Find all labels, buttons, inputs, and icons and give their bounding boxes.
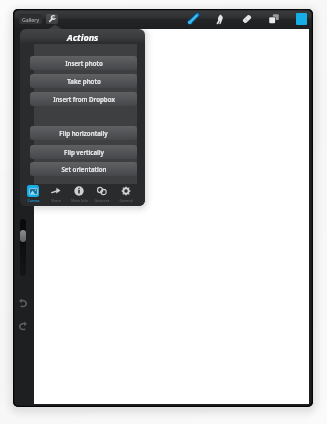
staticText: Flip horizontally bbox=[59, 129, 108, 137]
staticText: Canvas bbox=[27, 198, 40, 203]
button[interactable]: Brush size bbox=[20, 219, 26, 276]
staticText: Set orientation bbox=[61, 165, 107, 173]
staticText: Take photo bbox=[67, 77, 101, 85]
button[interactable]: Set orientation bbox=[30, 162, 137, 176]
staticText: Share bbox=[51, 198, 61, 203]
staticText: Gallery bbox=[22, 16, 40, 23]
staticText: More Info bbox=[71, 198, 88, 203]
button[interactable]: Smudge bbox=[213, 12, 227, 26]
button[interactable]: Take photo bbox=[30, 74, 137, 88]
button[interactable]: Gestures bbox=[91, 185, 113, 203]
staticText: Insert photo bbox=[65, 59, 103, 67]
staticText: Flip vertically bbox=[64, 148, 104, 156]
button[interactable]: Actions bbox=[46, 14, 58, 24]
button[interactable]: More Info bbox=[68, 185, 90, 203]
button[interactable]: Brush bbox=[186, 12, 200, 26]
staticText: General bbox=[119, 198, 133, 203]
button[interactable]: Insert from Dropbox bbox=[30, 92, 137, 106]
button[interactable]: Undo bbox=[18, 298, 28, 308]
staticText: Gestures bbox=[94, 198, 110, 203]
button[interactable]: Colour bbox=[296, 13, 307, 25]
button[interactable]: Gallery bbox=[19, 14, 42, 24]
button[interactable]: Layers bbox=[267, 12, 281, 26]
button[interactable]: General bbox=[115, 185, 137, 203]
button[interactable]: Flip horizontally bbox=[30, 126, 137, 140]
button[interactable]: Eraser bbox=[240, 12, 254, 26]
staticText: Actions bbox=[67, 31, 99, 43]
button[interactable]: Share bbox=[45, 185, 67, 203]
staticText: Insert from Dropbox bbox=[53, 95, 115, 103]
button[interactable]: Redo bbox=[18, 321, 28, 331]
button[interactable]: Insert photo bbox=[30, 56, 137, 70]
button[interactable]: Flip vertically bbox=[30, 145, 137, 159]
button[interactable]: Canvas bbox=[22, 185, 44, 203]
